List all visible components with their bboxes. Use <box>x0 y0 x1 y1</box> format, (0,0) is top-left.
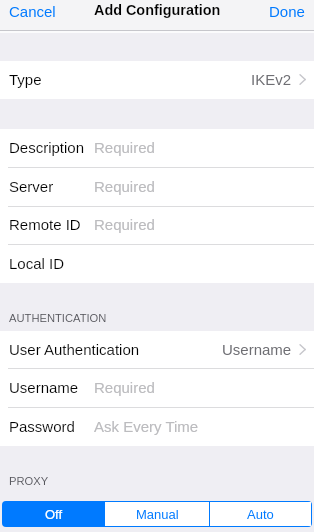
button[interactable]: Done <box>259 0 314 26</box>
button[interactable]: Auto <box>210 502 311 526</box>
button[interactable]: Description <box>0 129 314 168</box>
staticText: Cancel <box>9 3 56 20</box>
button[interactable]: Manual <box>105 502 209 526</box>
button[interactable]: Off <box>3 502 104 526</box>
button[interactable]: Password <box>0 408 314 447</box>
other: Open <box>299 74 306 85</box>
staticText: PROXY <box>9 475 49 488</box>
button[interactable]: User Authentication <box>0 331 314 369</box>
staticText: Server <box>9 178 54 195</box>
button[interactable]: Server <box>0 168 314 207</box>
staticText: Required <box>94 178 155 195</box>
staticText: IKEv2 <box>251 71 292 88</box>
button[interactable]: Cancel <box>0 0 66 26</box>
button[interactable]: Type <box>0 61 314 99</box>
staticText: Required <box>94 139 155 156</box>
staticText: Type <box>9 71 42 88</box>
staticText: Ask Every Time <box>94 418 199 435</box>
staticText: Remote ID <box>9 216 81 233</box>
staticText: Local ID <box>9 255 65 272</box>
staticText: Required <box>94 379 155 396</box>
staticText: AUTHENTICATION <box>9 312 107 325</box>
staticText: Username <box>9 379 79 396</box>
staticText: Add Configuration <box>94 2 221 18</box>
staticText: Username <box>222 341 292 358</box>
staticText: Off <box>45 507 63 522</box>
staticText: Auto <box>247 507 274 522</box>
staticText: User Authentication <box>9 341 140 358</box>
staticText: Required <box>94 216 155 233</box>
other: Open <box>299 344 306 355</box>
button[interactable]: Local ID <box>0 245 314 284</box>
staticText: Password <box>9 418 75 435</box>
staticText: Manual <box>136 507 179 522</box>
staticText: Description <box>9 139 85 156</box>
button[interactable]: Username <box>0 369 314 408</box>
staticText: Done <box>269 3 305 20</box>
button[interactable]: Remote ID <box>0 206 314 245</box>
